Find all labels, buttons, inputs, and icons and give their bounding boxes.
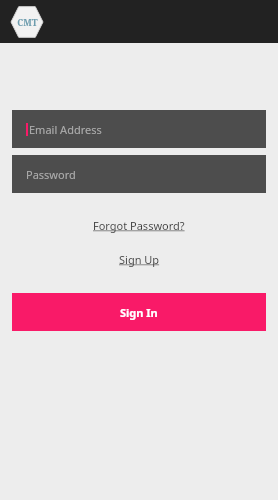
staticText: Sign In xyxy=(120,305,158,320)
button[interactable]: Password xyxy=(12,155,266,193)
staticText: Sign Up xyxy=(119,252,160,267)
button[interactable]: CMT home xyxy=(10,5,44,39)
button[interactable]: Email Address xyxy=(12,110,266,148)
staticText: CMT xyxy=(17,16,38,28)
button[interactable]: Sign Up xyxy=(113,249,166,270)
staticText: Forgot Password? xyxy=(93,218,185,233)
staticText: Password xyxy=(26,167,76,182)
button[interactable]: Forgot Password? xyxy=(87,215,191,236)
staticText: Email Address xyxy=(29,122,102,137)
button[interactable]: Sign In xyxy=(12,293,266,331)
